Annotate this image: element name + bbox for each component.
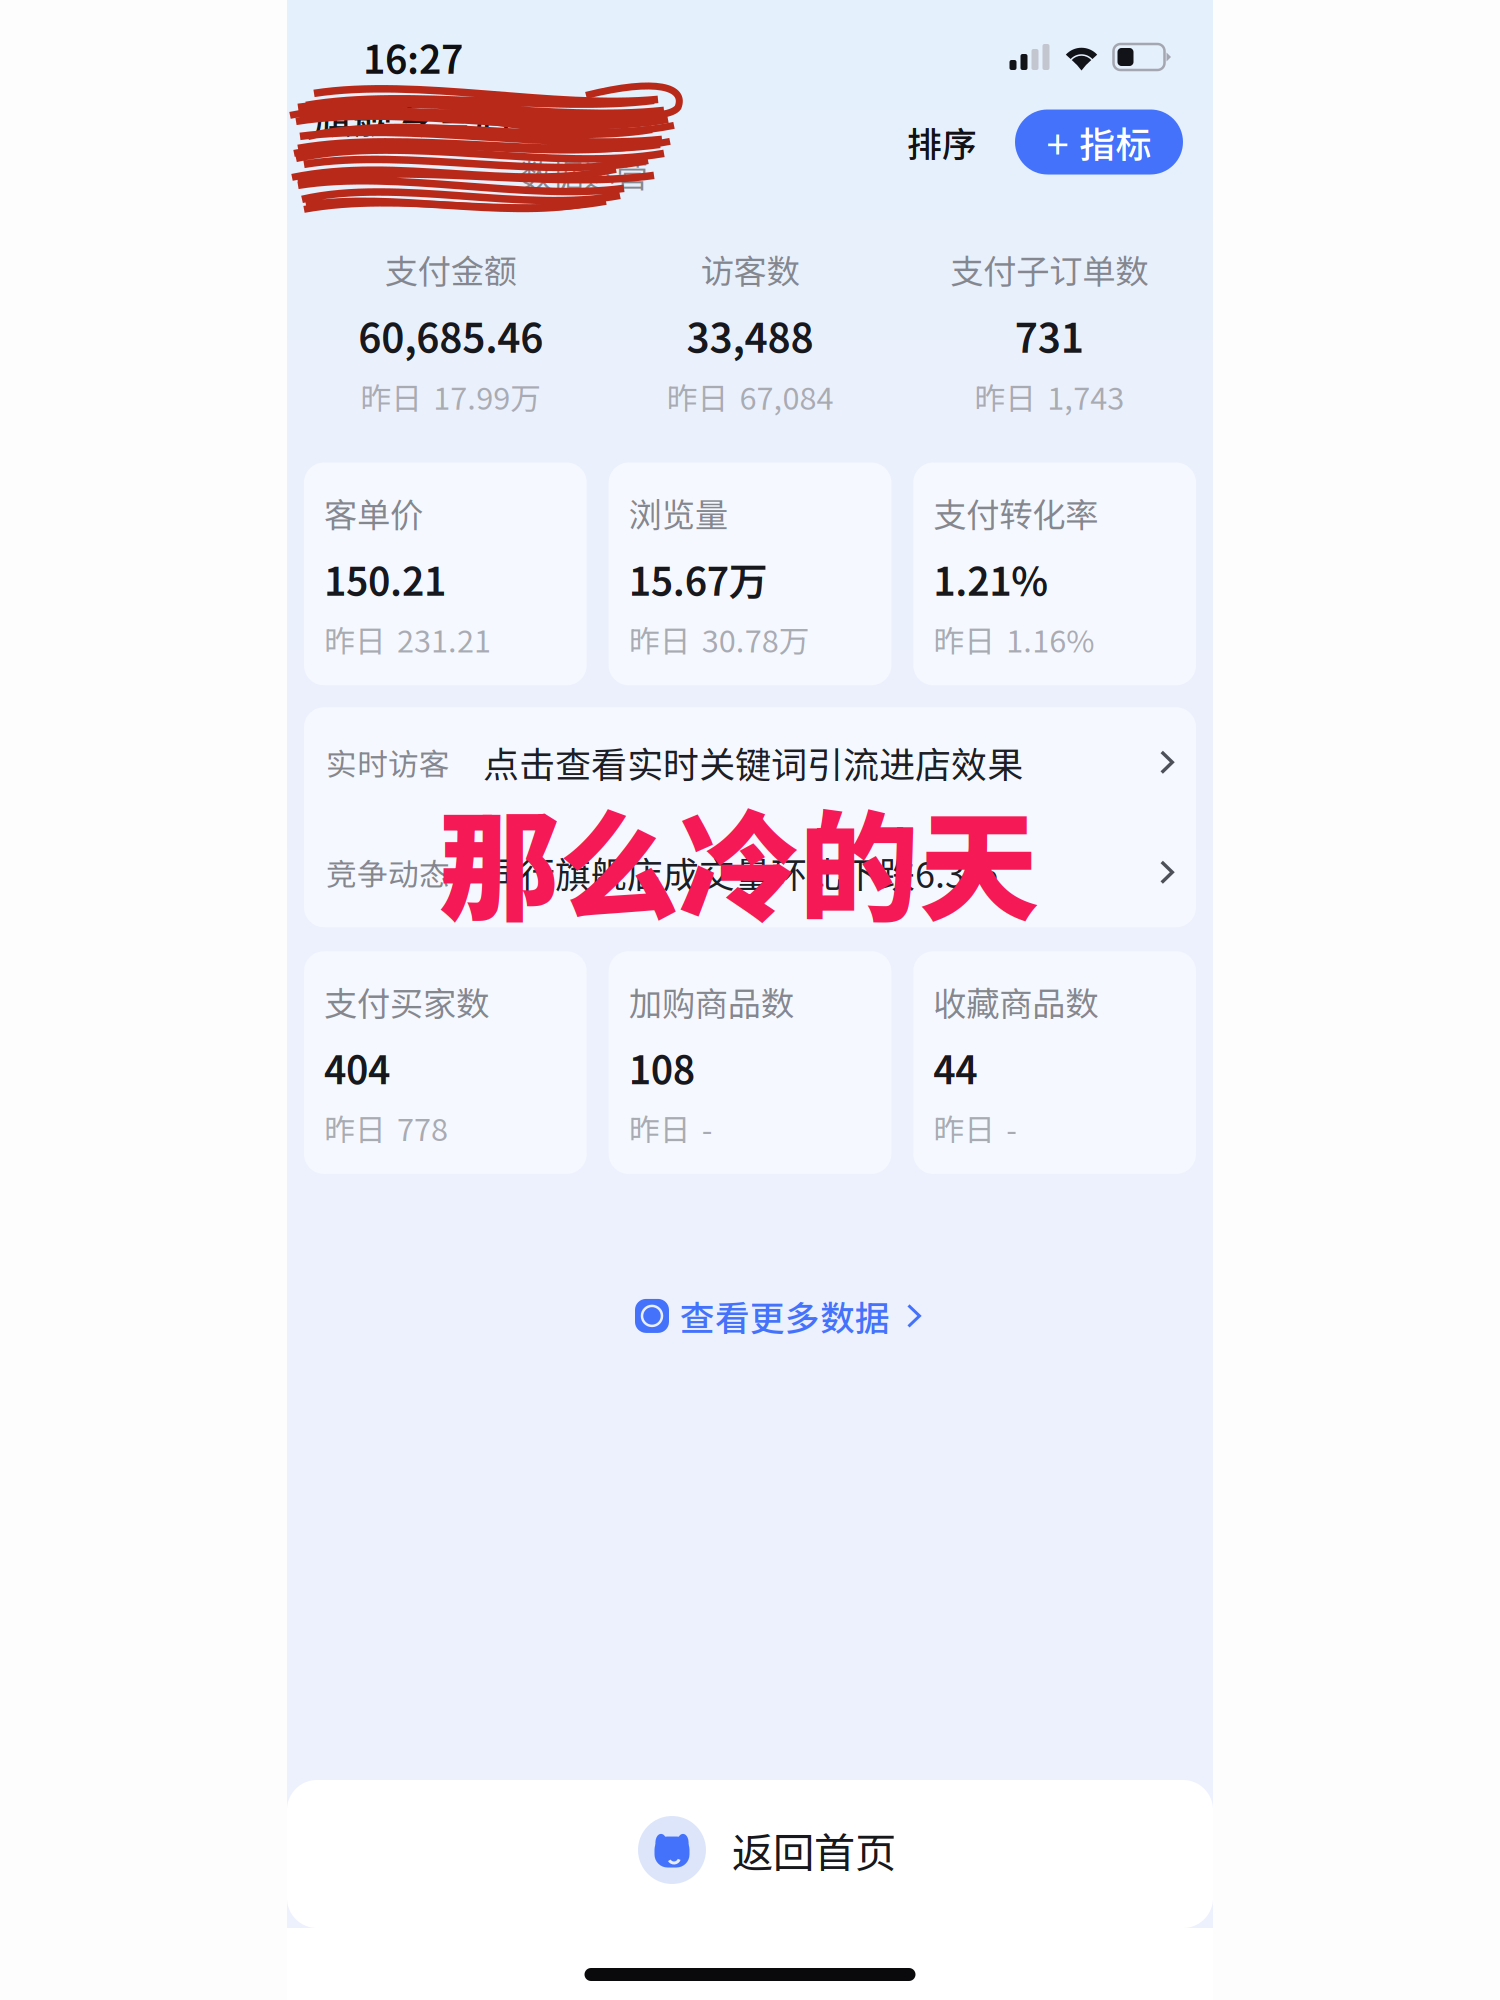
button[interactable]: 客单价 — [304, 463, 587, 685]
button[interactable]: 实时访客 — [304, 707, 1196, 817]
staticText: 访客数 — [700, 245, 799, 293]
staticText: 1,743 — [1047, 374, 1124, 419]
button[interactable]: 返回首页 — [287, 1780, 1213, 1928]
staticText: 指标 — [1079, 116, 1151, 168]
button[interactable]: 浏览量 — [609, 463, 891, 685]
button[interactable]: + — [1015, 109, 1183, 174]
staticText: 731 — [1015, 306, 1084, 364]
staticText: 昨日 — [933, 1105, 995, 1150]
staticText: 收藏商品数 — [933, 977, 1098, 1026]
button[interactable]: 加购商品数 — [609, 951, 891, 1174]
staticText: 支付金额 — [385, 245, 517, 293]
staticText: 返回首页 — [732, 1820, 896, 1880]
staticText: 67,084 — [739, 374, 833, 419]
staticText: 昨日 — [666, 374, 728, 419]
staticText: 数据运营 — [520, 150, 648, 197]
staticText: 昨日 — [974, 374, 1036, 419]
staticText: 点击查看实时关键词引流进店效果 — [483, 736, 1023, 788]
staticText: 查看更多数据 — [680, 1291, 890, 1341]
staticText: 实时访客 — [326, 740, 450, 784]
staticText: 客单价 — [324, 489, 423, 537]
staticText: 昨日 — [324, 1105, 386, 1150]
button[interactable]: 查看更多数据 — [597, 1291, 903, 1341]
staticText: - — [1006, 1105, 1017, 1150]
staticText: 1.21% — [933, 551, 1048, 607]
staticText: 同行旗舰店成交量环比下跌6.3% — [483, 846, 998, 898]
staticText: 33,488 — [686, 306, 813, 364]
staticText: 150.21 — [324, 551, 446, 607]
staticText: 竞争动态 — [326, 850, 450, 894]
staticText: - — [702, 1105, 713, 1150]
staticText: 支付买家数 — [324, 977, 489, 1026]
staticText: 支付转化率 — [933, 489, 1098, 537]
staticText: 旗舰专营店 — [313, 87, 513, 145]
button[interactable]: 竞争动态 — [304, 817, 1196, 927]
staticText: 231.21 — [397, 617, 491, 661]
staticText: 60,685.46 — [358, 306, 543, 364]
staticText: 404 — [324, 1039, 390, 1095]
staticText: 17.99万 — [433, 374, 541, 419]
staticText: 那么冷的天 — [439, 772, 1039, 946]
staticText: 昨日 — [324, 617, 386, 661]
button[interactable]: 支付买家数 — [304, 951, 587, 1174]
staticText: 昨日 — [933, 617, 995, 661]
staticText: 15.67万 — [629, 551, 768, 607]
staticText: 昨日 — [629, 1105, 691, 1150]
staticText: 支付子订单数 — [950, 245, 1148, 293]
staticText: 44 — [933, 1039, 977, 1095]
staticText: 昨日 — [360, 374, 422, 419]
button[interactable]: 排序 — [899, 109, 985, 174]
staticText: 30.78万 — [702, 617, 810, 661]
staticText: 排序 — [907, 117, 977, 167]
staticText: 778 — [397, 1105, 448, 1150]
button[interactable]: 支付转化率 — [913, 463, 1196, 685]
staticText: 昨日 — [629, 617, 691, 661]
staticText: 加购商品数 — [629, 977, 794, 1026]
staticText: + — [1046, 113, 1068, 171]
staticText: 16:27 — [363, 29, 463, 85]
staticText: 1.16% — [1006, 617, 1094, 661]
button[interactable]: 收藏商品数 — [913, 951, 1196, 1174]
staticText: 浏览量 — [629, 489, 728, 537]
staticText: 108 — [629, 1039, 695, 1095]
